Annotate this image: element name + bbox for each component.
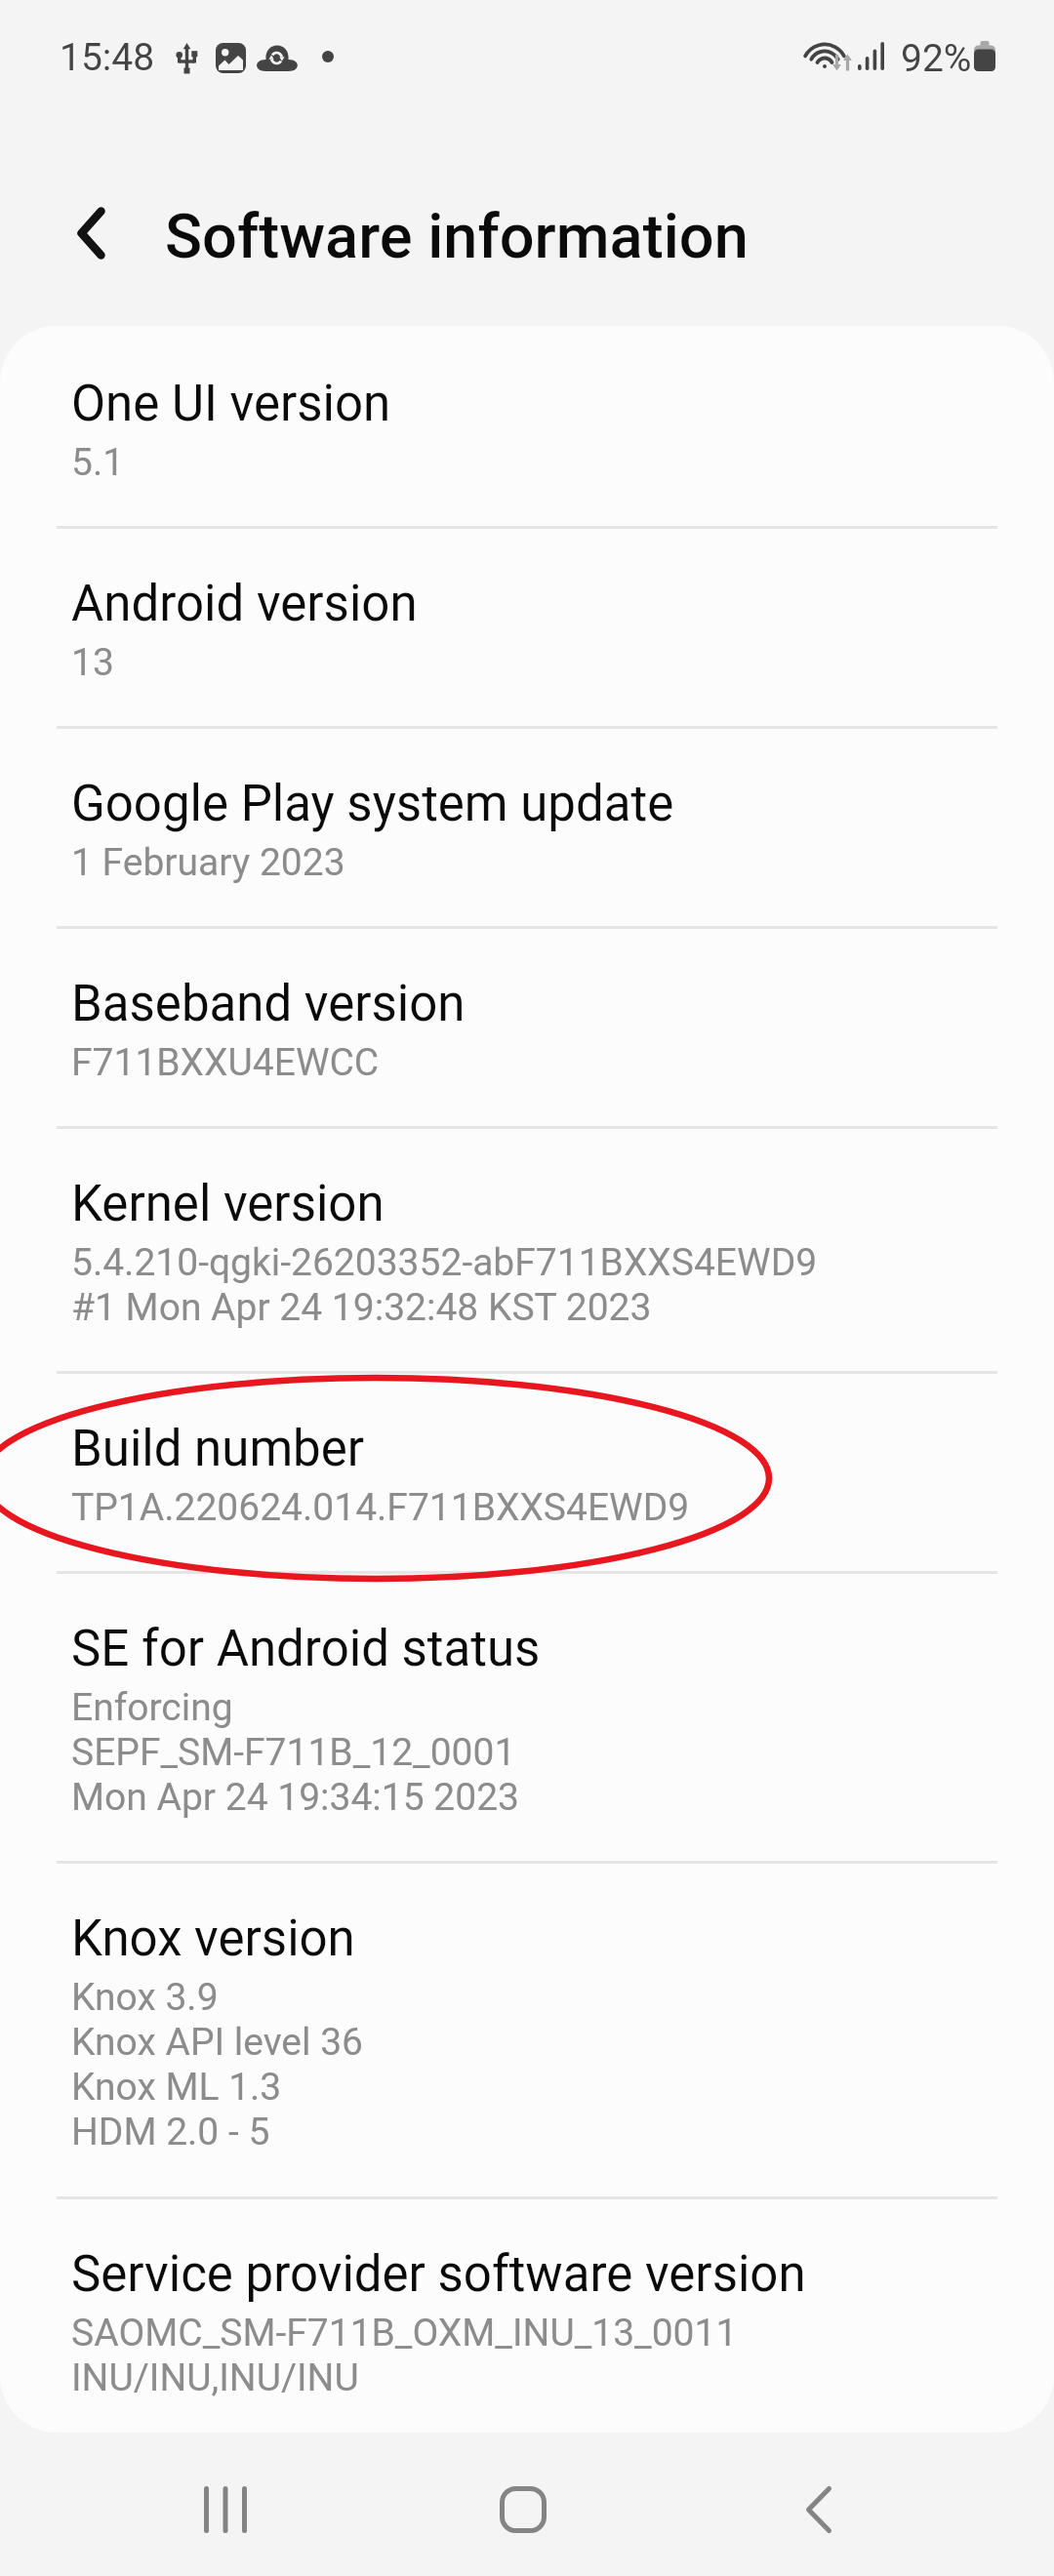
staticText: One UI version xyxy=(71,346,391,440)
button[interactable]: Home xyxy=(451,2437,594,2576)
staticText: F711BXXU4EWCC xyxy=(71,1040,380,1085)
button[interactable]: Kernel version xyxy=(0,1129,1054,1371)
staticText: #1 Mon Apr 24 19:32:48 KST 2023 xyxy=(71,1285,652,1330)
staticText: Software information xyxy=(165,200,749,272)
staticText: INU/INU,INU/INU xyxy=(71,2355,359,2400)
button[interactable]: Back xyxy=(747,2437,890,2576)
staticText: Kernel version xyxy=(71,1147,385,1240)
staticText: Build number xyxy=(71,1391,365,1485)
staticText: Mon Apr 24 19:34:15 2023 xyxy=(71,1775,519,1820)
button[interactable]: Service provider software version xyxy=(0,2199,1054,2433)
button[interactable]: Baseband version xyxy=(0,929,1054,1126)
button[interactable]: One UI version xyxy=(0,326,1054,526)
button[interactable]: Google Play system update xyxy=(0,729,1054,926)
staticText: TP1A.220624.014.F711BXXS4EWD9 xyxy=(71,1485,690,1530)
staticText: Enforcing xyxy=(71,1685,233,1730)
button[interactable]: Android version xyxy=(0,529,1054,726)
staticText: Knox API level 36 xyxy=(71,2020,363,2065)
staticText: Knox version xyxy=(71,1881,355,1975)
staticText: 5.1 xyxy=(71,440,125,485)
staticText: 92% xyxy=(901,36,972,81)
staticText: Android version xyxy=(71,546,418,640)
button[interactable]: Knox version xyxy=(0,1864,1054,2196)
staticText: 1 February 2023 xyxy=(71,840,345,885)
button[interactable]: Navigate up xyxy=(40,181,142,284)
staticText: SEPF_SM-F711B_12_0001 xyxy=(71,1730,516,1775)
staticText: SE for Android status xyxy=(71,1591,541,1685)
staticText: SAOMC_SM-F711B_OXM_INU_13_0011 xyxy=(71,2311,738,2355)
staticText: Service provider software version xyxy=(71,2217,806,2311)
button[interactable]: Recent apps xyxy=(153,2437,297,2576)
staticText: 13 xyxy=(71,640,114,685)
staticText: Baseband version xyxy=(71,946,466,1040)
staticText: Google Play system update xyxy=(71,746,674,840)
button[interactable]: Build number xyxy=(0,1374,1054,1571)
staticText: Knox ML 1.3 xyxy=(71,2065,282,2110)
staticText: Knox 3.9 xyxy=(71,1975,219,2020)
staticText: 5.4.210-qgki-26203352-abF711BXXS4EWD9 xyxy=(71,1240,818,1285)
staticText: HDM 2.0 - 5 xyxy=(71,2110,270,2154)
staticText: 15:48 xyxy=(60,35,155,80)
button[interactable]: SE for Android status xyxy=(0,1574,1054,1861)
